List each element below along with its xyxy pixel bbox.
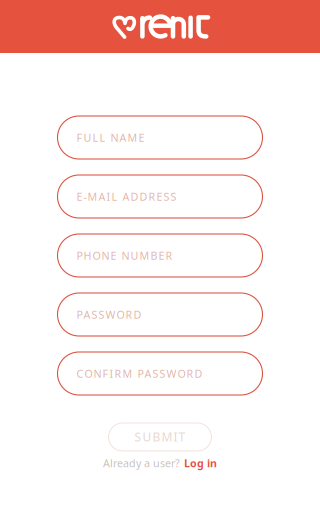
button[interactable]: F U L L N A M E — [57, 116, 262, 159]
staticText: S U B M I T — [134, 429, 185, 445]
button[interactable]: E - M A I L A D D R E S S — [57, 175, 262, 218]
button[interactable]: C O N F I R M P A S S W O R D — [57, 352, 262, 395]
button[interactable]: P H O N E N U M B E R — [57, 234, 262, 277]
button[interactable]: S U B M I T — [108, 423, 211, 451]
staticText: Log in — [184, 456, 217, 470]
staticText: Already a user? — [103, 456, 180, 470]
staticText: P A S S W O R D — [76, 307, 141, 322]
staticText: F U L L N A M E — [76, 130, 144, 145]
staticText: P H O N E N U M B E R — [76, 248, 172, 263]
button[interactable]: Log in — [184, 456, 217, 470]
staticText: E - M A I L A D D R E S S — [76, 189, 176, 204]
staticText: C O N F I R M P A S S W O R D — [76, 366, 202, 381]
button[interactable]: P A S S W O R D — [57, 293, 262, 336]
